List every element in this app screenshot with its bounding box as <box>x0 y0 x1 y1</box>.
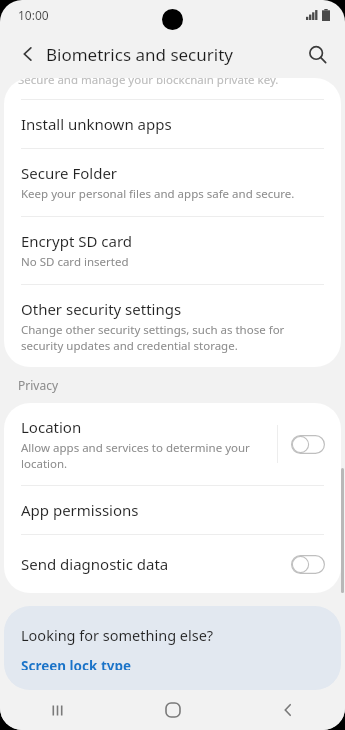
staticText: Keep your personal files and apps safe a… <box>21 186 295 202</box>
button[interactable]: Send diagnostic data <box>4 535 341 593</box>
button[interactable]: Recent apps <box>0 690 115 730</box>
staticText: Biometrics and security <box>46 43 233 66</box>
button[interactable]: Location <box>4 403 341 485</box>
staticText: Change other security settings, such as … <box>21 322 324 353</box>
staticText: No SD card inserted <box>21 254 129 270</box>
button[interactable]: Back <box>230 690 345 730</box>
staticText: Looking for something else? <box>21 625 214 645</box>
button[interactable]: Send diagnostic data toggle <box>288 549 328 579</box>
staticText: Send diagnostic data <box>21 554 169 574</box>
staticText: Allow apps and services to determine you… <box>21 440 277 471</box>
button[interactable]: Back <box>8 34 48 74</box>
button[interactable]: App permissions <box>4 486 341 534</box>
staticText: Install unknown apps <box>21 114 172 134</box>
button[interactable]: Search <box>297 34 337 74</box>
staticText: Screen lock type <box>21 657 132 670</box>
button[interactable]: Encrypt SD card <box>4 217 341 284</box>
button[interactable]: Screen lock type <box>21 657 132 670</box>
staticText: Privacy <box>18 377 59 393</box>
staticText: Location <box>21 417 82 437</box>
staticText: Encrypt SD card <box>21 231 133 251</box>
button[interactable]: Home <box>115 690 230 730</box>
button[interactable]: Secure Folder <box>4 149 341 216</box>
button[interactable]: Other security settings <box>4 285 341 367</box>
staticText: Secure Folder <box>21 163 118 183</box>
staticText: App permissions <box>21 500 139 520</box>
button[interactable]: Location toggle <box>288 429 328 459</box>
button[interactable]: Install unknown apps <box>4 100 341 148</box>
staticText: Secure and manage your blockchain privat… <box>18 78 279 88</box>
staticText: 10:00 <box>18 7 49 23</box>
staticText: Other security settings <box>21 299 182 319</box>
